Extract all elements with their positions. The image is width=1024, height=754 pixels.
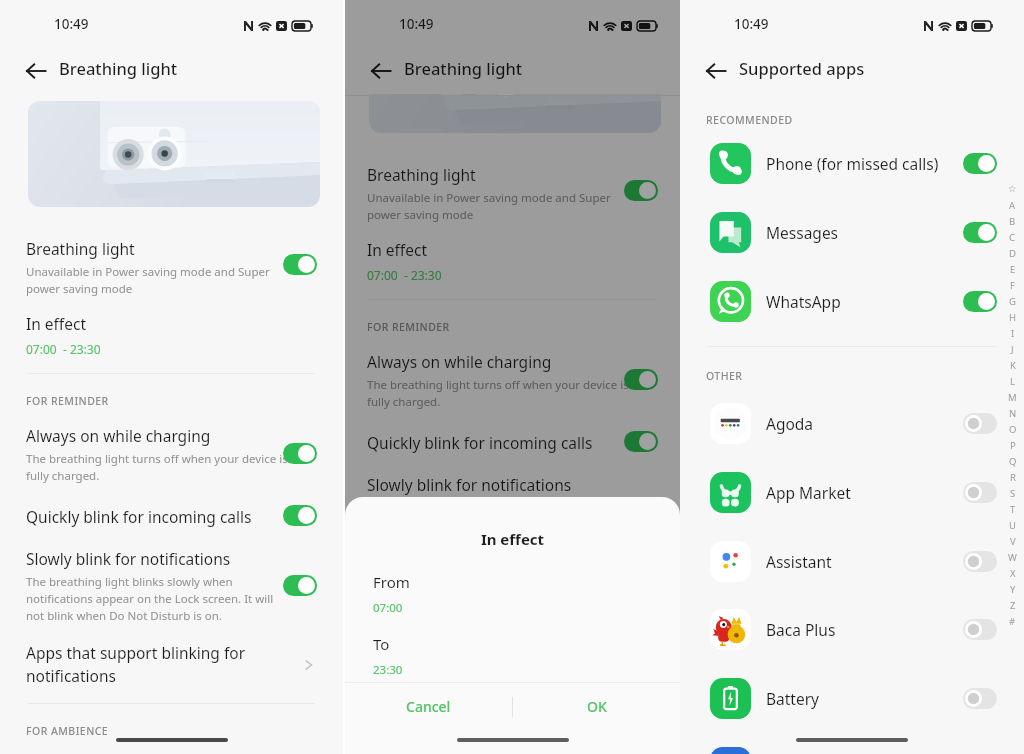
staticText: C: [1009, 231, 1016, 247]
staticText: OTHER: [706, 369, 743, 383]
button[interactable]: Agoda: [680, 403, 1024, 444]
button[interactable]: On: [624, 180, 658, 201]
staticText: FOR AMBIENCE: [26, 724, 109, 738]
button[interactable]: Quickly blink for incoming calls: [345, 432, 680, 453]
button[interactable]: Quickly blink for incoming calls: [0, 506, 343, 527]
button[interactable]: Back: [22, 57, 49, 84]
button[interactable]: Always on while charging: [0, 425, 343, 484]
staticText: Apps that support blinking for notificat…: [26, 642, 301, 687]
staticText: Quickly blink for incoming calls: [367, 432, 593, 453]
staticText: FOR REMINDER: [26, 394, 109, 408]
staticText: In effect: [345, 529, 680, 549]
button[interactable]: Assistant: [680, 541, 1024, 582]
button[interactable]: Always on while charging: [345, 351, 680, 410]
staticText: Breathing light: [404, 57, 523, 79]
button[interactable]: WhatsApp: [680, 281, 1024, 322]
staticText: Z: [1010, 599, 1016, 615]
button[interactable]: Messages: [680, 212, 1024, 253]
staticText: I: [1011, 327, 1015, 343]
button[interactable]: Off: [963, 482, 997, 503]
button[interactable]: On: [624, 431, 658, 452]
staticText: Slowly blink for notifications: [26, 548, 231, 569]
staticText: Breathing light: [26, 238, 135, 259]
staticText: R: [1010, 471, 1016, 487]
staticText: 10:49: [54, 15, 89, 33]
button[interactable]: Phone (for missed calls): [680, 143, 1024, 184]
button[interactable]: Off: [963, 413, 997, 434]
staticText: T: [1010, 503, 1016, 519]
staticText: Phone (for missed calls): [766, 153, 963, 174]
button[interactable]: From: [345, 572, 680, 616]
staticText: Baca Plus: [766, 619, 963, 640]
button[interactable]: In effect: [0, 313, 343, 357]
staticText: Assistant: [766, 551, 963, 572]
staticText: H: [1009, 311, 1017, 327]
button[interactable]: Battery: [680, 678, 1024, 719]
button[interactable]: OK: [513, 683, 680, 730]
staticText: OK: [587, 697, 607, 716]
button[interactable]: To: [345, 634, 680, 678]
staticText: 07:00 - 23:30: [367, 267, 442, 283]
staticText: The breathing light blinks slowly when n…: [26, 574, 274, 624]
staticText: To: [373, 634, 390, 654]
staticText: Q: [1009, 455, 1017, 471]
button[interactable]: Breathing light: [345, 164, 680, 223]
staticText: 10:49: [734, 15, 769, 33]
button[interactable]: Slowly blink for notifications: [345, 474, 680, 495]
button[interactable]: On: [283, 505, 317, 526]
button[interactable]: Off: [963, 688, 997, 709]
button[interactable]: On: [283, 443, 317, 464]
staticText: P: [1010, 439, 1016, 455]
staticText: Cancel: [406, 697, 451, 716]
staticText: Breathing light: [59, 57, 178, 79]
staticText: Unavailable in Power saving mode and Sup…: [367, 190, 611, 223]
button[interactable]: In effect: [345, 239, 680, 283]
staticText: FOR REMINDER: [367, 320, 450, 334]
staticText: In effect: [367, 239, 428, 260]
staticText: K: [1010, 359, 1016, 375]
staticText: 07:00: [373, 600, 403, 616]
staticText: Agoda: [766, 413, 963, 434]
staticText: D: [1009, 247, 1016, 263]
button[interactable]: Baca Plus: [680, 609, 1024, 650]
staticText: 10:49: [399, 15, 434, 33]
button[interactable]: Off: [963, 551, 997, 572]
button[interactable]: Breathing light: [0, 238, 343, 297]
button[interactable]: On: [624, 369, 658, 390]
button[interactable]: Off: [963, 619, 997, 640]
staticText: App Market: [766, 482, 963, 503]
staticText: B: [1009, 215, 1016, 231]
button[interactable]: On: [963, 222, 997, 243]
button[interactable]: Back: [702, 57, 729, 84]
button[interactable]: Back: [367, 57, 394, 84]
button[interactable]: On: [283, 575, 317, 596]
staticText: The breathing light turns off when your …: [26, 451, 288, 484]
staticText: The breathing light turns off when your …: [367, 377, 629, 410]
button[interactable]: On: [283, 254, 317, 275]
button[interactable]: App Market: [680, 472, 1024, 513]
staticText: ☆: [1008, 183, 1017, 199]
button[interactable]: Slowly blink for notifications: [0, 548, 343, 624]
staticText: RECOMMENDED: [706, 113, 793, 127]
staticText: Slowly blink for notifications: [367, 474, 572, 495]
staticText: X: [1010, 567, 1016, 583]
staticText: V: [1010, 535, 1016, 551]
button[interactable]: Apps that support blinking for notificat…: [0, 642, 343, 687]
staticText: M: [1008, 391, 1017, 407]
staticText: Supported apps: [739, 57, 865, 79]
button[interactable]: Browser: [680, 747, 1024, 754]
staticText: 23:30: [373, 662, 403, 678]
button[interactable]: On: [963, 291, 997, 312]
staticText: WhatsApp: [766, 291, 963, 312]
staticText: Quickly blink for incoming calls: [26, 506, 252, 527]
staticText: In effect: [26, 313, 87, 334]
staticText: O: [1009, 423, 1017, 439]
button[interactable]: Cancel: [345, 683, 512, 730]
staticText: From: [373, 572, 410, 592]
staticText: Messages: [766, 222, 963, 243]
staticText: W: [1008, 551, 1017, 567]
button[interactable]: On: [963, 153, 997, 174]
staticText: Battery: [766, 688, 963, 709]
staticText: U: [1009, 519, 1016, 535]
